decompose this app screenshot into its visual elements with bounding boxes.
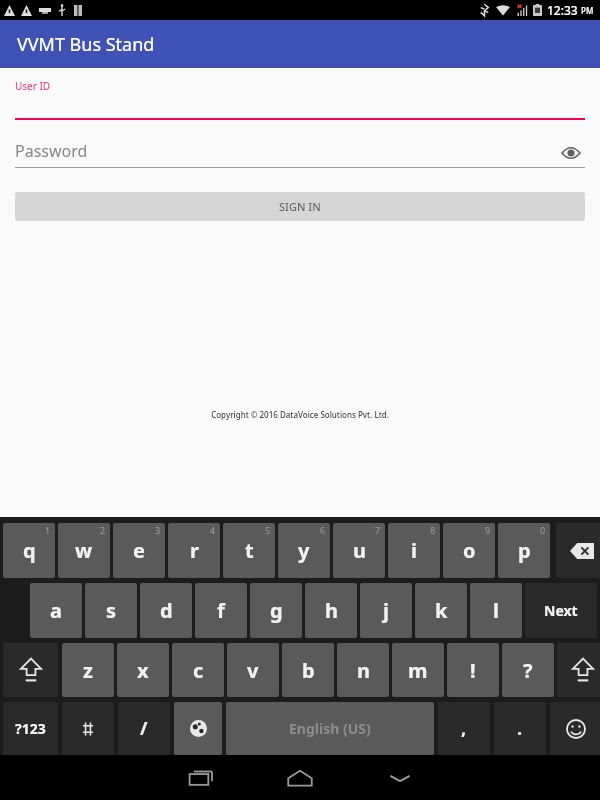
button[interactable]: Emoji (550, 702, 600, 755)
button[interactable]: x (117, 643, 169, 697)
staticText: q (23, 537, 36, 564)
button[interactable]: c (172, 643, 224, 697)
staticText: 2 (100, 524, 106, 536)
staticText: r (190, 537, 199, 564)
staticText: z (83, 657, 93, 684)
staticText: 12:33 (547, 2, 578, 18)
staticText: a (50, 597, 62, 624)
staticText: b (302, 657, 315, 684)
button[interactable]: Shift (557, 643, 600, 697)
button[interactable]: t (223, 523, 275, 578)
staticText: k (435, 597, 448, 624)
staticText: Copyright © 2016 DataVoice Solutions Pvt… (0, 409, 600, 420)
button[interactable]: Show password (560, 142, 582, 164)
button[interactable]: Shift (3, 643, 58, 697)
staticText: Password (15, 140, 88, 162)
button[interactable]: i (388, 523, 440, 578)
staticText: o (463, 537, 476, 564)
staticText: 9 (485, 524, 491, 536)
button[interactable]: m (392, 643, 444, 697)
button[interactable]: p (498, 523, 550, 578)
button[interactable]: z (62, 643, 114, 697)
button[interactable]: o (443, 523, 495, 578)
staticText: f (217, 597, 225, 624)
staticText: ?123 (15, 719, 46, 738)
button[interactable]: v (227, 643, 279, 697)
staticText: m (408, 657, 428, 684)
button[interactable]: Home (275, 763, 325, 793)
staticText: i (411, 537, 417, 564)
staticText: t (245, 537, 254, 564)
staticText: g (270, 597, 283, 624)
staticText: l (493, 597, 499, 624)
staticText: d (160, 597, 173, 624)
staticText: PM (581, 5, 594, 16)
button[interactable]: w (58, 523, 110, 578)
button[interactable]: r (168, 523, 220, 578)
button[interactable]: s (85, 583, 137, 638)
staticText: English (US) (289, 719, 371, 738)
button[interactable]: q (3, 523, 55, 578)
button[interactable]: Change language (174, 702, 222, 755)
staticText: SIGN IN (279, 199, 321, 214)
button[interactable]: English (US) (226, 702, 434, 755)
button[interactable]: u (333, 523, 385, 578)
button[interactable]: Password (0, 134, 600, 168)
staticText: . (517, 716, 523, 741)
button[interactable]: ?123 (3, 702, 58, 755)
button[interactable]: l (470, 583, 522, 638)
button[interactable]: k (415, 583, 467, 638)
button[interactable]: e (113, 523, 165, 578)
button[interactable]: Next (525, 583, 597, 638)
staticText: User ID (15, 79, 51, 93)
button[interactable]: h (305, 583, 357, 638)
button[interactable]: d (140, 583, 192, 638)
button[interactable]: g (250, 583, 302, 638)
staticText: u (353, 537, 366, 564)
staticText: 8 (430, 524, 436, 536)
button[interactable]: n (337, 643, 389, 697)
button[interactable]: SIGN IN (15, 192, 585, 221)
button[interactable]: / (118, 702, 170, 755)
button[interactable]: y (278, 523, 330, 578)
staticText: 5 (265, 524, 271, 536)
staticText: s (106, 597, 117, 624)
staticText: h (325, 597, 338, 624)
button[interactable]: a (30, 583, 82, 638)
staticText: x (137, 657, 149, 684)
staticText: v (247, 657, 259, 684)
button[interactable]: Backspace (556, 523, 600, 578)
staticText: n (357, 657, 370, 684)
button[interactable]: j (360, 583, 412, 638)
button[interactable]: f (195, 583, 247, 638)
staticText: 3 (155, 524, 161, 536)
staticText: w (75, 537, 93, 564)
button[interactable]: ? (502, 643, 554, 697)
staticText: ? (523, 657, 533, 684)
staticText: 7 (375, 524, 381, 536)
staticText: 6 (320, 524, 326, 536)
button[interactable]: . (494, 702, 546, 755)
staticText: / (140, 716, 148, 741)
staticText: VVMT Bus Stand (17, 32, 155, 57)
staticText: y (298, 537, 310, 564)
staticText: 1 (45, 524, 51, 536)
staticText: j (383, 597, 389, 624)
button[interactable]: Hide keyboard (375, 763, 425, 793)
staticText: 4 (210, 524, 216, 536)
button[interactable]: b (282, 643, 334, 697)
button[interactable]: Recents (175, 763, 225, 793)
staticText: , (461, 716, 467, 741)
staticText: e (133, 537, 145, 564)
button[interactable]: Settings (62, 702, 114, 755)
staticText: p (518, 537, 531, 564)
button[interactable]: , (438, 702, 490, 755)
staticText: 0 (540, 524, 546, 536)
staticText: Next (544, 601, 578, 620)
staticText: ! (470, 657, 476, 684)
button[interactable]: ! (447, 643, 499, 697)
staticText: c (193, 657, 204, 684)
